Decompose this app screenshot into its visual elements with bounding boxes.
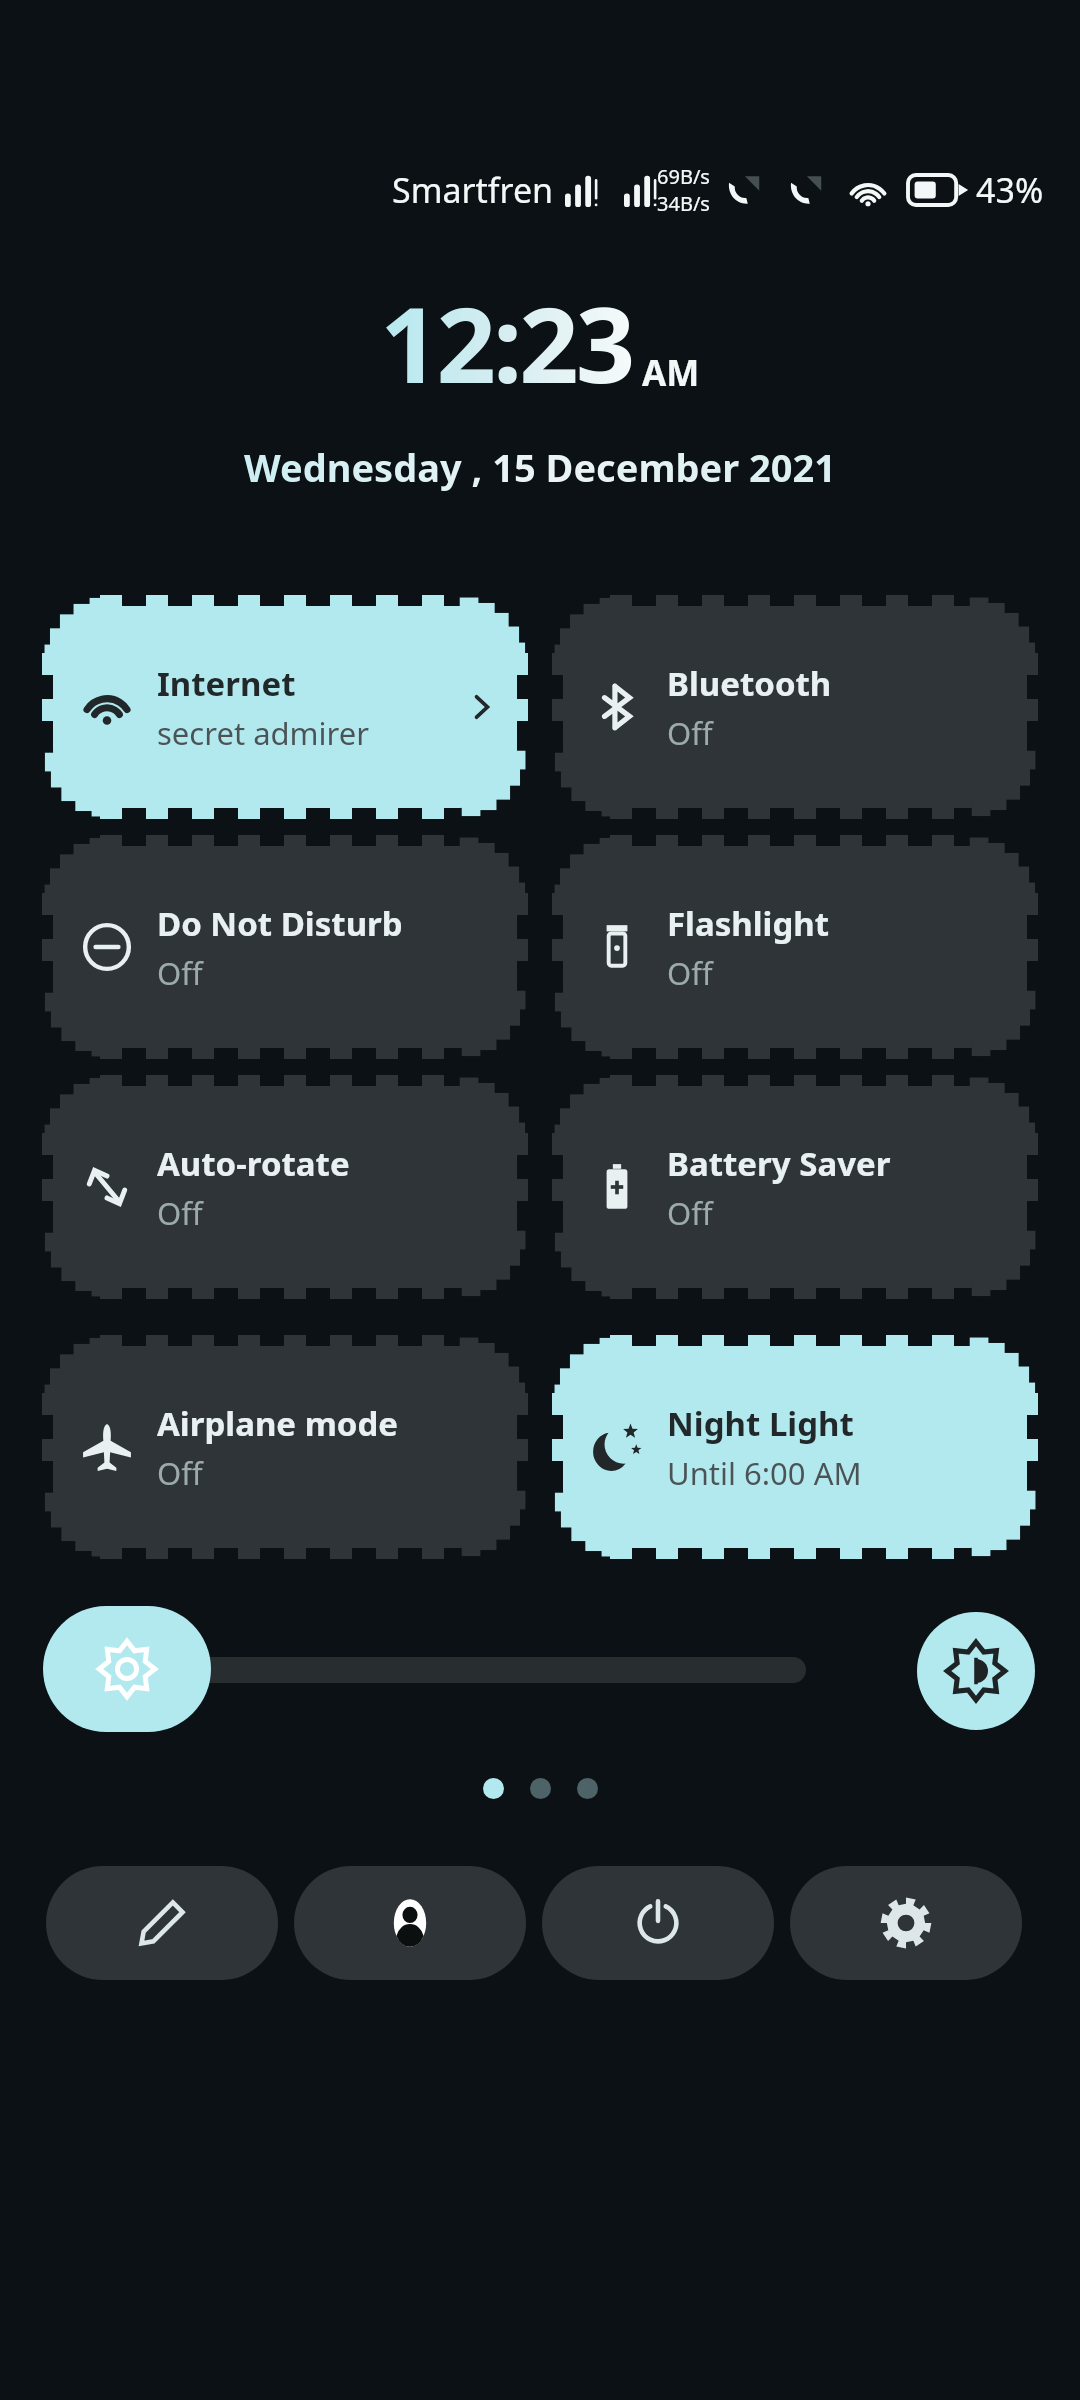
button[interactable]: Profile <box>294 1866 526 1980</box>
button[interactable]: Airplane mode <box>45 1338 525 1556</box>
staticText: Until 6:00 AM <box>667 1452 862 1494</box>
staticText: Airplane mode <box>157 1401 398 1446</box>
button[interactable]: Edit tiles <box>46 1866 278 1980</box>
staticText: 12:23 <box>380 272 633 414</box>
button[interactable]: Auto-rotate <box>45 1078 525 1296</box>
button[interactable]: Auto brightness <box>917 1612 1035 1730</box>
staticText: Wednesday , 15 December 2021 <box>244 441 836 493</box>
button[interactable]: Battery Saver <box>555 1078 1035 1296</box>
staticText: Off <box>157 952 203 994</box>
staticText: 69B/s <box>657 163 710 190</box>
button[interactable]: Flashlight <box>555 838 1035 1056</box>
staticText: Internet <box>157 661 296 706</box>
staticText: Night Light <box>667 1401 854 1446</box>
button[interactable]: Do Not Disturb <box>45 838 525 1056</box>
staticText: 43% <box>976 167 1044 213</box>
staticText: Auto-rotate <box>157 1141 350 1186</box>
button[interactable]: Settings <box>790 1866 1022 1980</box>
button[interactable]: Power <box>542 1866 774 1980</box>
staticText: secret admirer <box>157 712 370 754</box>
button[interactable]: Internet <box>45 598 525 816</box>
staticText: Off <box>667 712 713 754</box>
staticText: Smartfren <box>392 167 554 213</box>
staticText: Off <box>667 952 713 994</box>
staticText: AM <box>642 349 700 397</box>
staticText: 34B/s <box>657 190 710 217</box>
staticText: Flashlight <box>667 901 830 946</box>
button[interactable]: Brightness slider <box>43 1606 211 1732</box>
staticText: Battery Saver <box>667 1141 891 1186</box>
button[interactable]: Night Light <box>555 1338 1035 1556</box>
staticText: Off <box>667 1192 713 1234</box>
staticText: Do Not Disturb <box>157 901 403 946</box>
staticText: Bluetooth <box>667 661 832 706</box>
staticText: Off <box>157 1192 203 1234</box>
staticText: Off <box>157 1452 203 1494</box>
button[interactable]: Bluetooth <box>555 598 1035 816</box>
